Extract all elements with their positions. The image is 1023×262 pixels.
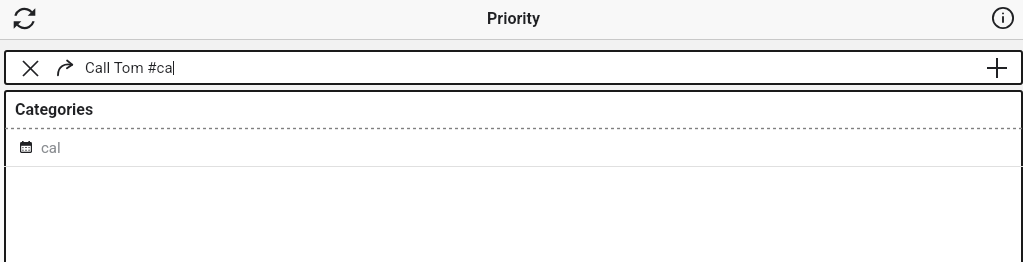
staticText: cal: [41, 139, 61, 157]
button[interactable]: Redo: [52, 50, 76, 85]
button[interactable]: Clear: [4, 50, 52, 85]
staticText: Categories: [15, 100, 94, 119]
button[interactable]: cal: [4, 129, 1023, 166]
staticText: Priority: [487, 9, 540, 28]
button[interactable]: Sync: [10, 4, 39, 33]
staticText: Call Tom #ca: [85, 59, 173, 77]
button[interactable]: Info: [989, 4, 1017, 32]
button[interactable]: Add: [974, 50, 1023, 85]
